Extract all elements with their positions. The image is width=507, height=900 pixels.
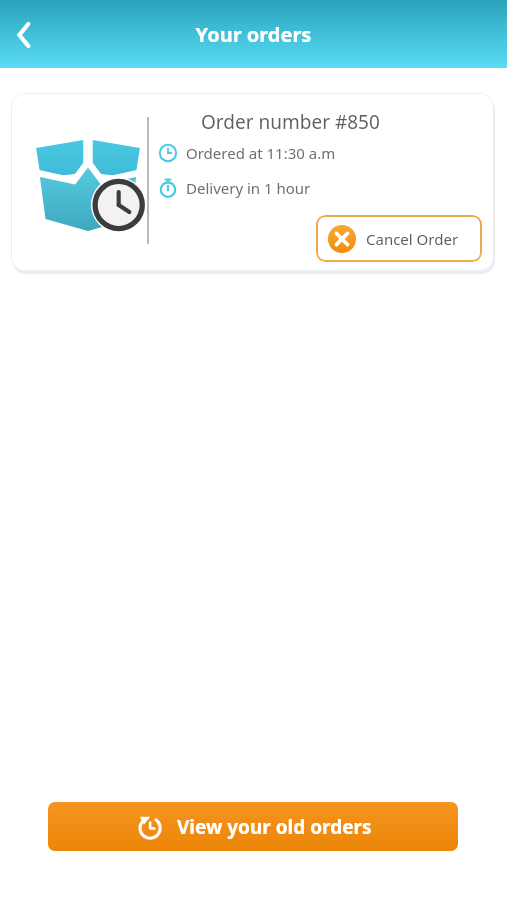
button[interactable]: Order number #850	[11, 93, 494, 271]
staticText: View your old orders	[177, 814, 372, 840]
staticText: Cancel Order	[366, 229, 459, 249]
button[interactable]: View your old orders	[48, 802, 458, 851]
staticText: Ordered at 11:30 a.m	[186, 143, 336, 163]
staticText: Order number #850	[201, 109, 380, 135]
staticText: Delivery in 1 hour	[186, 178, 311, 198]
button[interactable]: Back	[2, 14, 44, 56]
button[interactable]: Cancel Order	[316, 215, 482, 262]
staticText: Your orders	[0, 21, 507, 48]
